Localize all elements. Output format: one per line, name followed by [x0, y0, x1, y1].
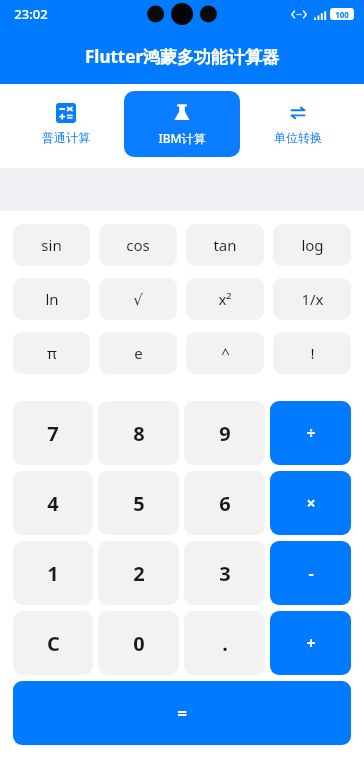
staticText: sin [41, 235, 62, 255]
button[interactable]: + [270, 611, 351, 675]
button[interactable]: tan [186, 224, 264, 266]
staticText: 0 [133, 630, 145, 657]
button[interactable]: 普通计算 [11, 91, 121, 157]
button[interactable]: sin [13, 224, 90, 266]
button[interactable]: 1/x [273, 278, 351, 320]
staticText: Flutter鸿蒙多功能计算器 [85, 45, 279, 68]
staticText: e [134, 343, 143, 363]
button[interactable]: ! [273, 332, 351, 374]
staticText: log [301, 235, 324, 255]
button[interactable]: × [270, 471, 351, 535]
button[interactable]: 3 [184, 541, 265, 605]
staticText: 单位转换 [274, 130, 322, 145]
staticText: tan [213, 235, 237, 255]
staticText: 100 [335, 9, 349, 20]
button[interactable]: 单位转换 [243, 91, 353, 157]
button[interactable]: √ [99, 278, 177, 320]
staticText: × [306, 492, 316, 514]
button[interactable]: - [270, 541, 351, 605]
staticText: 9 [219, 420, 231, 447]
staticText: ! [310, 343, 315, 363]
button[interactable]: . [184, 611, 265, 675]
staticText: 5 [133, 490, 145, 517]
staticText: . [222, 630, 228, 657]
button[interactable]: 6 [184, 471, 265, 535]
staticText: = [177, 702, 187, 725]
button[interactable]: 8 [98, 401, 179, 465]
button[interactable]: 9 [184, 401, 265, 465]
button[interactable]: ÷ [270, 401, 351, 465]
button[interactable]: log [273, 224, 351, 266]
button[interactable]: π [13, 332, 90, 374]
staticText: x² [218, 289, 232, 309]
staticText: 4 [47, 490, 59, 517]
staticText: 3 [219, 560, 231, 587]
button[interactable]: ln [13, 278, 90, 320]
staticText: π [47, 343, 57, 363]
button[interactable]: cos [99, 224, 177, 266]
staticText: ^ [221, 343, 230, 363]
button[interactable]: 1 [13, 541, 93, 605]
staticText: 7 [47, 420, 59, 447]
staticText: √ [133, 291, 143, 308]
staticText: IBM计算 [158, 130, 206, 146]
button[interactable]: 7 [13, 401, 93, 465]
staticText: 6 [219, 490, 231, 517]
button[interactable]: 0 [98, 611, 179, 675]
button[interactable]: ^ [186, 332, 264, 374]
button[interactable]: e [99, 332, 177, 374]
staticText: + [306, 632, 316, 654]
button[interactable]: 4 [13, 471, 93, 535]
button[interactable]: 2 [98, 541, 179, 605]
staticText: 1 [47, 560, 59, 587]
staticText: 普通计算 [42, 130, 90, 145]
button[interactable]: = [13, 681, 351, 745]
staticText: 23:02 [14, 5, 48, 23]
staticText: C [47, 630, 60, 657]
button[interactable]: 5 [98, 471, 179, 535]
staticText: cos [126, 235, 150, 255]
button[interactable]: IBM计算 [124, 91, 240, 157]
button[interactable]: C [13, 611, 93, 675]
staticText: 8 [133, 420, 145, 447]
staticText: - [308, 562, 314, 584]
staticText: ln [45, 289, 59, 309]
staticText: 1/x [301, 289, 324, 309]
staticText: 2 [133, 560, 145, 587]
button[interactable]: x² [186, 278, 264, 320]
staticText: ÷ [306, 422, 316, 444]
